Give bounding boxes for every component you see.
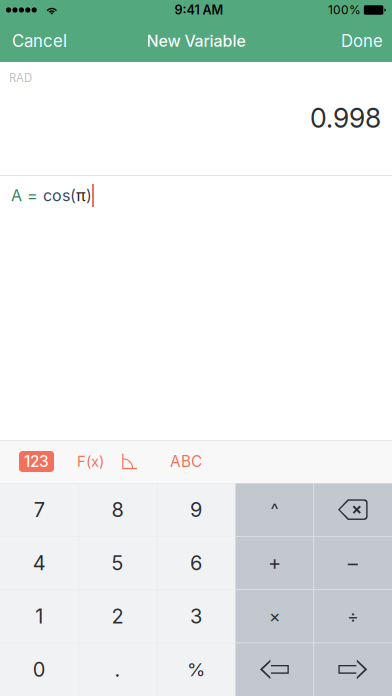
staticText: Cancel: [12, 31, 67, 51]
staticText: 1: [35, 604, 43, 628]
button[interactable]: 6: [157, 536, 235, 589]
staticText: 8: [112, 497, 124, 522]
button[interactable]: ABC: [162, 440, 210, 483]
button[interactable]: Move right: [314, 643, 392, 696]
button[interactable]: 123: [15, 440, 58, 483]
staticText: RAD: [9, 71, 32, 85]
staticText: –: [348, 551, 358, 575]
button[interactable]: 2: [78, 589, 157, 643]
staticText: New Variable: [146, 31, 245, 51]
button[interactable]: 0: [0, 643, 78, 696]
button[interactable]: 9: [157, 483, 235, 536]
staticText: ABC: [170, 452, 202, 471]
button[interactable]: 1: [0, 589, 78, 643]
button[interactable]: ×: [235, 589, 314, 643]
button[interactable]: Cancel: [0, 20, 80, 62]
staticText: π: [76, 186, 86, 205]
button[interactable]: +: [235, 536, 314, 589]
button[interactable]: F(x): [69, 440, 112, 483]
staticText: =: [27, 186, 43, 205]
staticText: +: [268, 551, 281, 575]
button[interactable]: %: [157, 643, 235, 696]
button[interactable]: 8: [78, 483, 157, 536]
staticText: ^: [270, 499, 278, 520]
button[interactable]: .: [78, 643, 157, 696]
button[interactable]: Delete: [314, 483, 392, 536]
staticText: 4: [33, 551, 46, 575]
staticText: ×: [269, 606, 280, 627]
staticText: Done: [341, 31, 383, 51]
staticText: ÷: [347, 606, 358, 627]
button[interactable]: Done: [332, 20, 392, 62]
staticText: .: [115, 657, 121, 681]
staticText: ): [86, 186, 92, 205]
staticText: 100%: [328, 3, 361, 17]
staticText: cos(: [43, 186, 76, 205]
button[interactable]: 3: [157, 589, 235, 643]
button[interactable]: 4: [0, 536, 78, 589]
staticText: 3: [190, 604, 202, 628]
button[interactable]: –: [314, 536, 392, 589]
staticText: 9: [190, 497, 202, 522]
staticText: 123: [24, 452, 49, 471]
button[interactable]: 7: [0, 483, 78, 536]
button[interactable]: Move left: [235, 643, 314, 696]
staticText: 0: [33, 657, 46, 681]
staticText: 9:41 AM: [174, 2, 223, 18]
button[interactable]: Angles: [115, 440, 146, 483]
staticText: 6: [190, 551, 202, 575]
button[interactable]: 5: [78, 536, 157, 589]
button[interactable]: ÷: [314, 589, 392, 643]
staticText: 2: [112, 604, 124, 628]
staticText: F(x): [77, 453, 104, 470]
staticText: 0.998: [310, 102, 381, 134]
staticText: A: [11, 186, 27, 205]
staticText: 7: [34, 497, 45, 522]
staticText: %: [187, 658, 205, 681]
staticText: 5: [112, 551, 124, 575]
button[interactable]: ^: [235, 483, 314, 536]
